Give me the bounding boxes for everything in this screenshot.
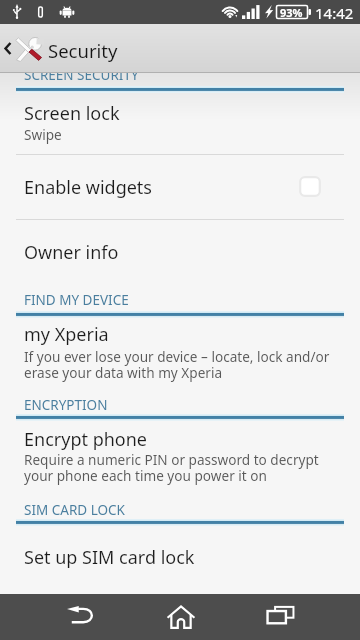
- button[interactable]: Owner info: [0, 240, 360, 265]
- button[interactable]: Navigate up: [0, 24, 46, 72]
- staticText: Encrypt phone: [24, 427, 147, 452]
- button[interactable]: Recent apps: [247, 594, 314, 640]
- staticText: Swipe: [24, 125, 62, 144]
- staticText: Enable widgets: [24, 175, 152, 200]
- button[interactable]: Enable widgets: [0, 175, 360, 201]
- staticText: If you ever lose your device – locate, l…: [24, 347, 330, 382]
- staticText: ENCRYPTION: [24, 396, 108, 414]
- staticText: SCREEN SECURITY: [24, 73, 139, 84]
- staticText: Screen lock: [24, 101, 120, 126]
- button[interactable]: Encrypt phone: [0, 427, 360, 452]
- staticText: FIND MY DEVICE: [24, 291, 129, 309]
- staticText: my Xperia: [24, 322, 109, 347]
- staticText: 14:42: [315, 3, 354, 23]
- button[interactable]: Screen lock: [0, 101, 360, 126]
- staticText: Owner info: [24, 240, 119, 265]
- button[interactable]: my Xperia: [0, 322, 360, 347]
- button[interactable]: Back: [47, 594, 114, 640]
- staticText: SIM CARD LOCK: [24, 501, 125, 519]
- button[interactable]: Set up SIM card lock: [0, 545, 360, 570]
- staticText: Set up SIM card lock: [24, 545, 195, 570]
- staticText: Require a numeric PIN or password to dec…: [24, 450, 319, 485]
- button[interactable]: Home: [147, 594, 214, 640]
- staticText: 93%: [280, 5, 303, 19]
- staticText: Security: [48, 38, 118, 63]
